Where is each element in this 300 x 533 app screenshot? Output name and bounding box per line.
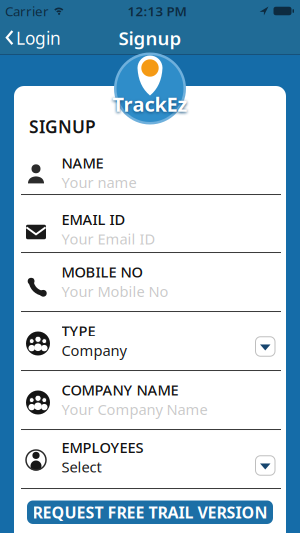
staticText: Your Mobile No: [61, 281, 168, 301]
button[interactable]: TYPE: [14, 312, 286, 360]
button[interactable]: REQUEST FREE TRAIL VERSION: [27, 500, 273, 524]
staticText: TrackEz: [112, 91, 187, 117]
staticText: Your Email ID: [61, 229, 155, 248]
button[interactable]: MOBILE NO: [14, 253, 286, 301]
staticText: EMPLOYEES: [61, 437, 143, 457]
button[interactable]: Show options: [255, 456, 275, 475]
staticText: Login: [16, 26, 61, 49]
staticText: COMPANY NAME: [61, 380, 178, 399]
staticText: TYPE: [61, 321, 95, 340]
staticText: MOBILE NO: [61, 262, 142, 281]
staticText: Your name: [61, 172, 136, 192]
staticText: NAME: [61, 153, 103, 172]
staticText: Your Company Name: [61, 399, 207, 419]
button[interactable]: Login: [6, 26, 61, 49]
button[interactable]: EMAIL ID: [14, 195, 286, 248]
button[interactable]: EMPLOYEES: [14, 430, 286, 476]
staticText: SIGNUP: [29, 115, 96, 138]
staticText: Carrier: [5, 2, 49, 20]
staticText: EMAIL ID: [61, 209, 125, 229]
staticText: 12:13 PM: [127, 2, 186, 20]
staticText: Signup: [118, 26, 181, 50]
button[interactable]: NAME: [14, 136, 286, 192]
staticText: REQUEST FREE TRAIL VERSION: [32, 502, 267, 523]
button[interactable]: Show options: [255, 337, 275, 356]
button[interactable]: COMPANY NAME: [14, 371, 286, 419]
staticText: Company: [61, 340, 126, 360]
staticText: Select: [61, 457, 101, 476]
